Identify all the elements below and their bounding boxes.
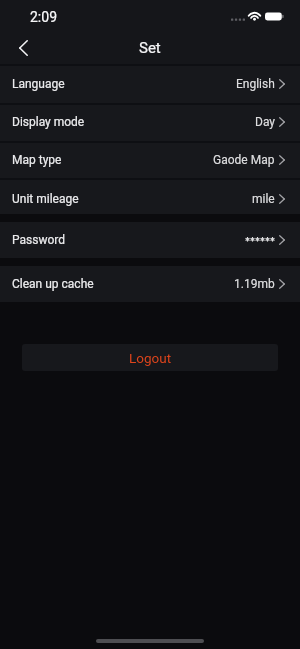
button[interactable]: Display mode [0, 104, 300, 140]
staticText: 1.19mb [234, 277, 275, 291]
staticText: Map type [12, 153, 62, 167]
staticText: Logout [129, 350, 172, 366]
button[interactable]: Language [0, 65, 300, 102]
staticText: 2:09 [30, 9, 57, 25]
staticText: Password [12, 233, 66, 247]
staticText: Language [12, 77, 65, 91]
button[interactable]: Logout [22, 344, 278, 371]
staticText: mile [252, 192, 275, 206]
staticText: Clean up cache [12, 277, 94, 291]
staticText: Gaode Map [213, 153, 275, 167]
staticText: English [236, 77, 275, 91]
staticText: Set [139, 39, 161, 57]
button[interactable]: Back [5, 29, 40, 64]
button[interactable]: Map type [0, 142, 300, 178]
staticText: Day [255, 115, 275, 129]
button[interactable]: Unit mileage [0, 181, 300, 216]
staticText: Unit mileage [12, 192, 79, 206]
button[interactable]: Clean up cache [0, 266, 300, 302]
staticText: Display mode [12, 115, 85, 129]
button[interactable]: Password [0, 222, 300, 258]
